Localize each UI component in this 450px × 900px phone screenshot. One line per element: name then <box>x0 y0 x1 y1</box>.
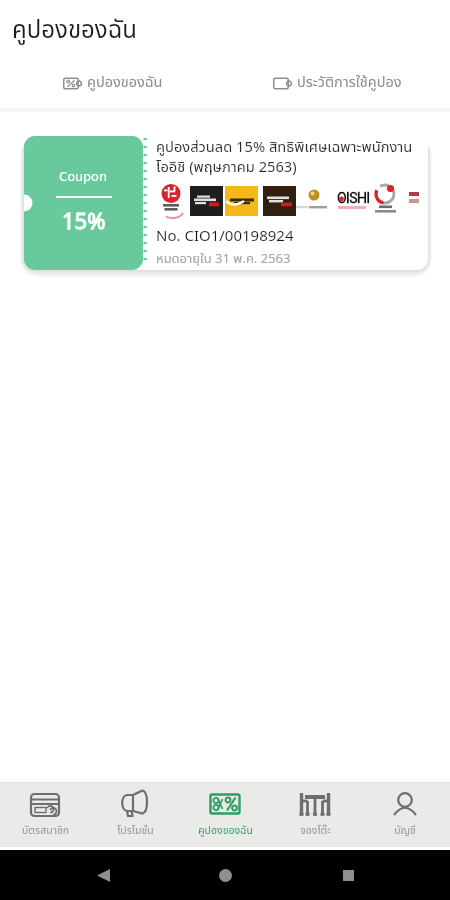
button[interactable]: โปรโมชั่น <box>90 783 180 847</box>
button[interactable]: ประวัติการใช้คูปอง <box>225 61 450 83</box>
staticText: ประวัติการใช้คูปอง <box>297 72 402 94</box>
button[interactable]: Home <box>205 855 245 895</box>
button[interactable]: Recents <box>328 855 368 895</box>
staticText: 15% <box>62 206 106 239</box>
staticText: คูปองของฉัน <box>198 823 253 839</box>
button[interactable]: Coupon <box>24 136 428 270</box>
staticText: จองโต๊ะ <box>300 823 331 839</box>
staticText: โปรโมชั่น <box>117 823 154 839</box>
button[interactable]: คูปองของฉัน <box>0 61 225 83</box>
staticText: คูปองของฉัน <box>12 13 137 49</box>
staticText: หมดอายุใน 31 พ.ค. 2563 <box>156 249 291 269</box>
button[interactable]: บัตรสมาชิก <box>0 783 90 847</box>
staticText: บัตรสมาชิก <box>22 823 69 839</box>
staticText: คูปองส่วนลด 15% สิทธิพิเศษเฉพาะพนักงานโอ… <box>156 136 422 179</box>
staticText: OISHI <box>337 190 370 206</box>
button[interactable]: จองโต๊ะ <box>270 783 360 847</box>
staticText: คูปองของฉัน <box>87 72 163 94</box>
staticText: No. CIO1/00198924 <box>156 225 294 248</box>
button[interactable]: คูปองของฉัน <box>180 783 270 847</box>
staticText: Coupon <box>59 167 108 187</box>
button[interactable]: บัญชี <box>360 783 450 847</box>
staticText: บัญชี <box>394 823 416 839</box>
button[interactable]: Back <box>83 855 123 895</box>
